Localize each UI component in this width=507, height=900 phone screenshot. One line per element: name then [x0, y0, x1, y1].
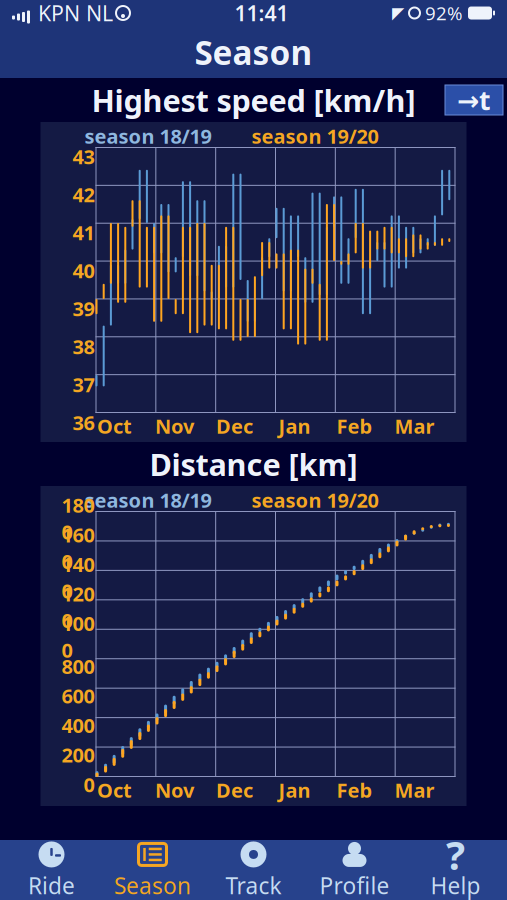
staticText: Oct [97, 413, 132, 439]
staticText: 37 [72, 371, 94, 398]
staticText: season 18/19 [84, 123, 211, 149]
staticText: season 18/19 [84, 487, 211, 513]
staticText: 0 [83, 771, 94, 798]
staticText: Season [194, 30, 312, 74]
staticText: 40 [72, 257, 94, 284]
staticText: 92% [425, 1, 463, 25]
staticText: 43 [72, 143, 94, 170]
button[interactable]: Switch time axis [445, 85, 503, 115]
staticText: 1400 [61, 551, 94, 604]
staticText: →t [457, 82, 491, 118]
staticText: Feb [336, 777, 372, 803]
staticText: Feb [336, 413, 372, 439]
staticText: 1000 [61, 610, 94, 663]
staticText: Highest speed [km/h] [91, 80, 415, 120]
staticText: 1600 [61, 521, 94, 574]
button[interactable]: Ride [1, 840, 102, 900]
staticText: Dec [216, 777, 253, 803]
staticText: 41 [72, 219, 94, 246]
staticText: 1800 [61, 492, 94, 545]
staticText: Help [430, 870, 480, 900]
staticText: Season [114, 870, 191, 900]
staticText: 800 [61, 653, 94, 679]
staticText: 1200 [61, 580, 94, 634]
staticText: Nov [155, 777, 194, 803]
staticText: Profile [319, 870, 389, 900]
staticText: Jan [278, 413, 310, 439]
staticText: Dec [216, 413, 253, 439]
staticText: 200 [61, 742, 94, 768]
button[interactable]: Profile [304, 840, 405, 900]
button[interactable]: Track [203, 840, 304, 900]
staticText: Oct [97, 777, 132, 803]
staticText: Mar [394, 413, 434, 439]
staticText: Nov [155, 413, 194, 439]
staticText: 42 [72, 181, 94, 208]
staticText: 36 [72, 409, 94, 436]
staticText: ◤ [392, 4, 404, 22]
staticText: Track [225, 870, 281, 900]
staticText: Mar [394, 777, 434, 803]
staticText: Jan [278, 777, 310, 803]
staticText: season 19/20 [251, 487, 378, 513]
staticText: 600 [61, 682, 94, 709]
staticText: season 19/20 [251, 123, 378, 149]
staticText: 11:41 [234, 0, 288, 27]
button[interactable]: ? [405, 840, 506, 900]
staticText: ? [446, 828, 465, 881]
staticText: Ride [28, 870, 75, 900]
staticText: 39 [72, 295, 94, 322]
staticText: KPN NL [32, 0, 113, 27]
staticText: Distance [km] [149, 444, 357, 484]
staticText: 400 [61, 712, 94, 739]
button[interactable]: Season [102, 840, 203, 900]
staticText: 38 [72, 333, 94, 360]
